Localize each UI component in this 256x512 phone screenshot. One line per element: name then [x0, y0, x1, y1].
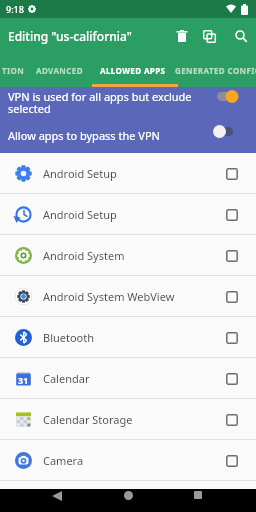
button[interactable]: TION [2, 65, 25, 76]
button[interactable] [211, 88, 243, 105]
staticText: 31 [18, 374, 29, 386]
staticText: Android System [43, 248, 125, 263]
button[interactable] [45, 489, 69, 512]
button[interactable] [207, 123, 239, 140]
staticText: Calendar Storage [43, 412, 133, 427]
button[interactable]: Android Setup [0, 153, 256, 194]
staticText: Android System WebView [43, 289, 175, 304]
staticText: Camera [43, 453, 84, 468]
staticText: VPN is used for all apps but exclude sel… [8, 89, 192, 116]
button[interactable] [186, 489, 210, 512]
button[interactable] [196, 23, 222, 49]
button[interactable]: Android System WebView [0, 276, 256, 317]
button[interactable]: ALLOWED APPS [100, 65, 166, 76]
button[interactable] [228, 23, 254, 49]
staticText: 9:18 [6, 3, 24, 15]
button[interactable]: Android Setup [0, 194, 256, 235]
button[interactable] [170, 24, 194, 48]
button[interactable] [116, 489, 140, 512]
staticText: Android Setup [43, 207, 117, 222]
staticText: Allow apps to bypass the VPN [8, 128, 160, 143]
button[interactable]: Bluetooth [0, 317, 256, 358]
staticText: Bluetooth [43, 330, 95, 345]
button[interactable]: Calendar Storage [0, 399, 256, 440]
button[interactable]: Android System [0, 235, 256, 276]
button[interactable]: Camera [0, 440, 256, 481]
staticText: Editing "us-california" [8, 28, 132, 44]
button[interactable]: ADVANCED [36, 65, 83, 76]
button[interactable]: GENERATED CONFIG [175, 65, 256, 76]
staticText: Android Setup [43, 166, 117, 181]
staticText: Calendar [43, 371, 90, 386]
button[interactable]: 31 [0, 358, 256, 399]
